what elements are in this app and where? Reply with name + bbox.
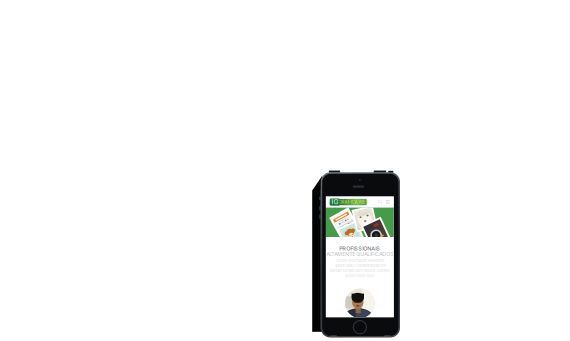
staticText: GRAFICA WEB [338, 199, 368, 205]
button[interactable]: Search [378, 200, 383, 205]
staticText: ALTAMENTE QUALIFICADOS [326, 251, 393, 257]
staticText: PROFISSIONAIS [339, 245, 380, 252]
button[interactable]: IG Gráfica Web — home [329, 198, 367, 206]
staticText: Somos uma equipe altamente qualificada e… [329, 258, 390, 278]
staticText: IG [331, 198, 338, 206]
button[interactable]: Menu [385, 200, 390, 205]
